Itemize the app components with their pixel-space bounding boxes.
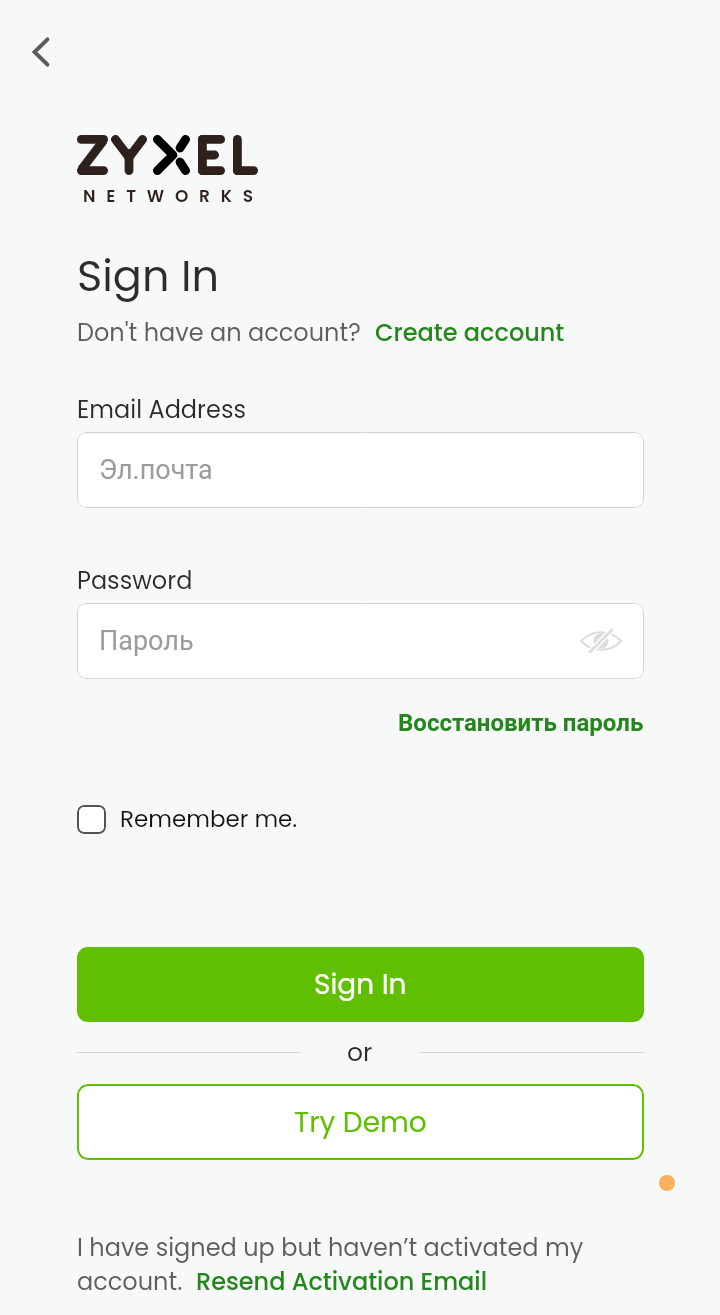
staticText: Don't have an account?	[77, 316, 361, 350]
staticText: Try Demo	[294, 1103, 427, 1142]
button[interactable]: Show password	[578, 618, 624, 664]
staticText: Восстановить пароль	[398, 709, 644, 737]
staticText: Эл.почта	[99, 454, 213, 486]
staticText: I have signed up but haven’t activated m…	[77, 1231, 584, 1265]
staticText: Create account	[375, 316, 565, 350]
button[interactable]: Sign In	[77, 947, 644, 1022]
staticText: Email Address	[77, 393, 246, 427]
button[interactable]: Пароль	[77, 603, 644, 679]
button[interactable]: Remember me.	[77, 803, 298, 835]
button[interactable]: Create account	[375, 316, 565, 350]
staticText: Sign In	[314, 965, 407, 1004]
staticText: Sign In	[77, 246, 219, 306]
staticText: Resend Activation Email	[196, 1265, 488, 1299]
staticText: Пароль	[99, 625, 194, 657]
staticText: or	[347, 1035, 373, 1070]
button[interactable]: Back	[9, 20, 73, 84]
staticText: Remember me.	[120, 803, 298, 835]
button[interactable]: Try Demo	[77, 1084, 644, 1160]
button[interactable]: Resend Activation Email	[196, 1265, 488, 1299]
staticText: Password	[77, 564, 193, 598]
button[interactable]: Восстановить пароль	[398, 709, 644, 737]
staticText: account.	[77, 1265, 183, 1299]
staticText: NETWORKS	[83, 184, 265, 208]
button[interactable]: Эл.почта	[77, 432, 644, 508]
